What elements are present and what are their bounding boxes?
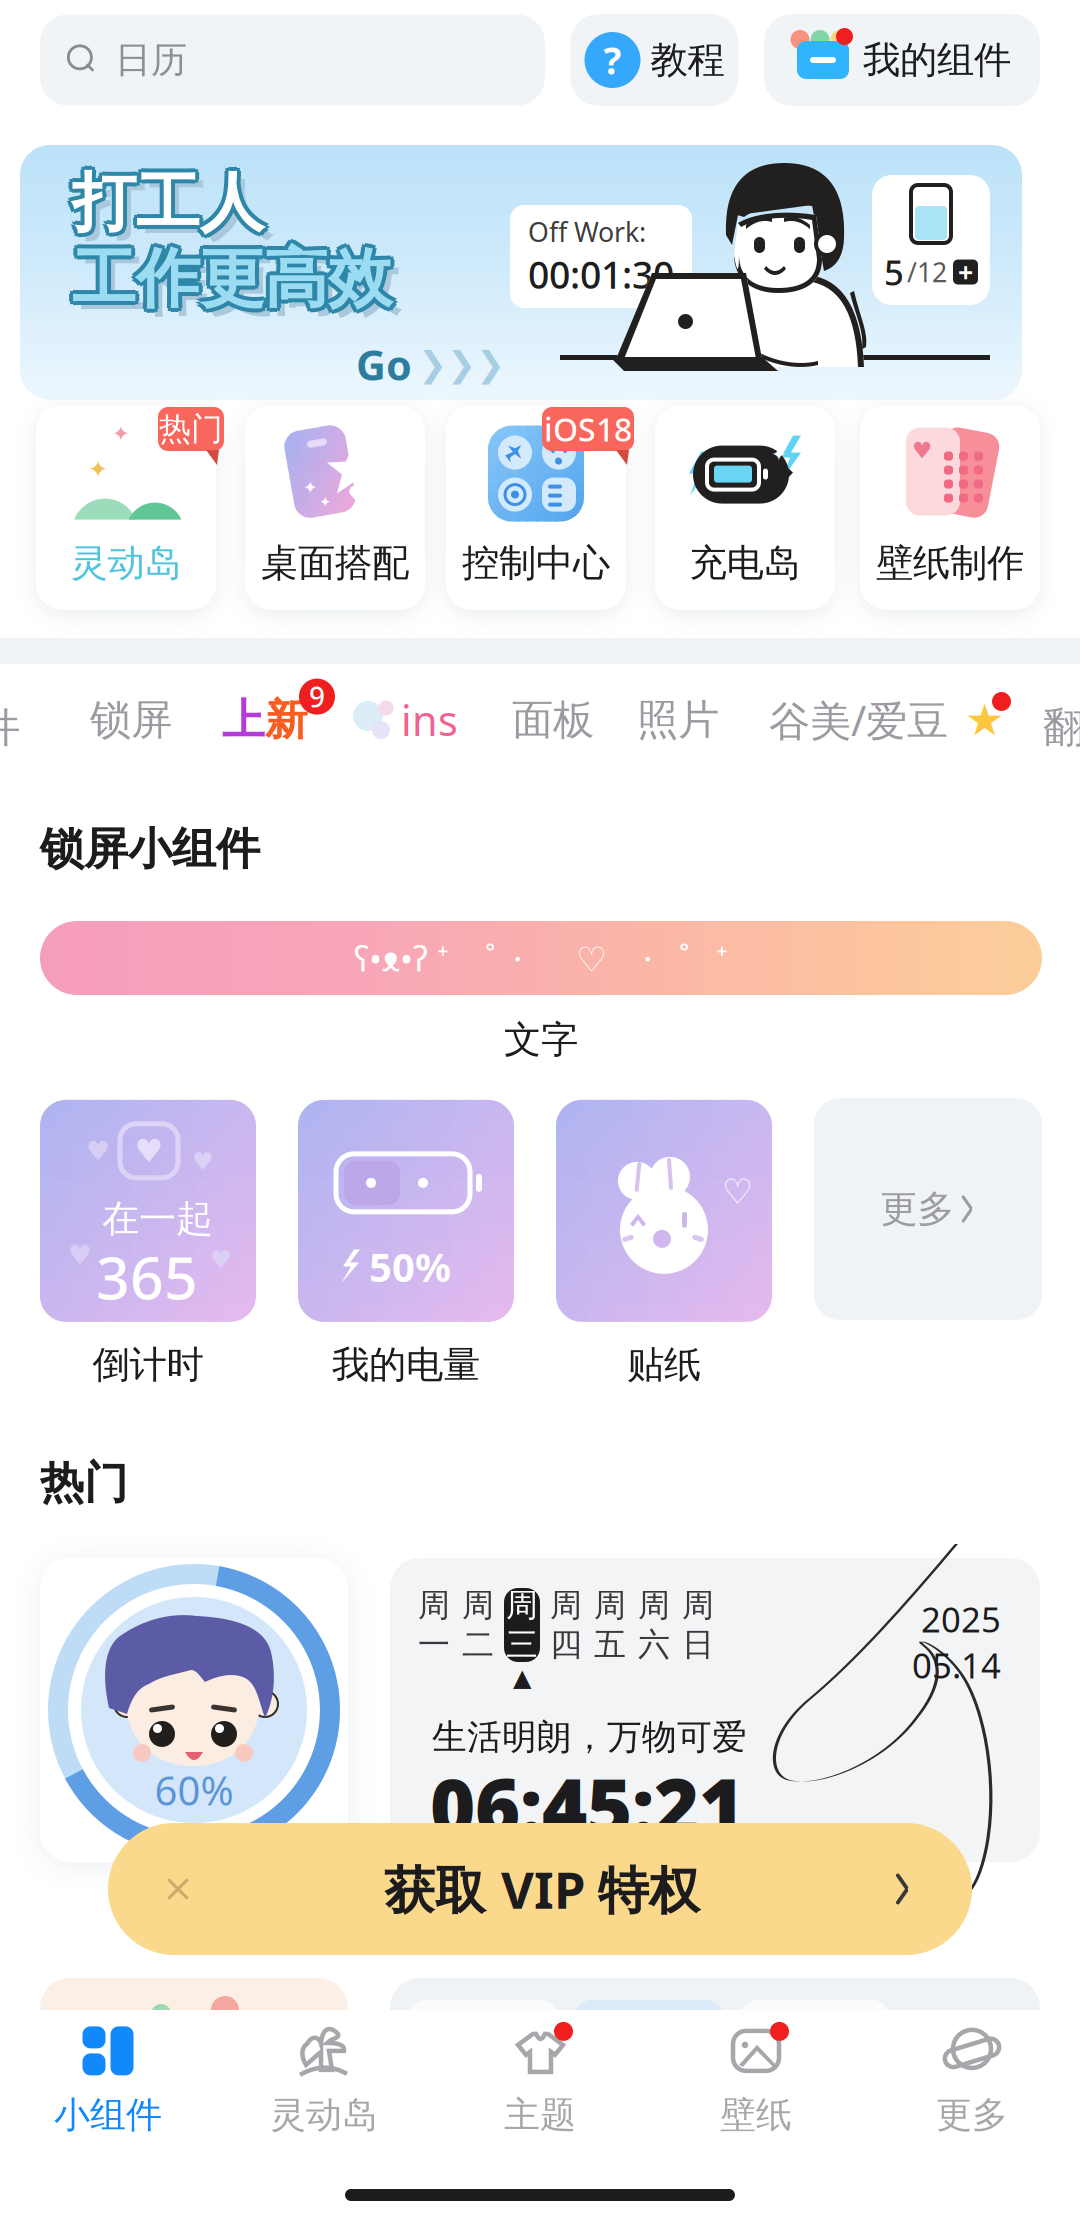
staticText: 打工人 (75, 161, 267, 239)
staticText: ♥ (68, 1240, 92, 1270)
button[interactable]: ? (570, 14, 738, 106)
button[interactable]: ✦ (245, 405, 425, 610)
staticText: 灵动岛 (70, 540, 181, 586)
button[interactable]: 照片 (630, 690, 726, 750)
staticText: ✦ (112, 422, 130, 446)
staticText: 打工人 (72, 160, 264, 238)
button[interactable]: 面板 (505, 690, 601, 750)
staticText: 打工人 (68, 164, 260, 242)
staticText: 二 (462, 1625, 494, 1664)
staticText: 打工人 (75, 167, 267, 245)
button[interactable]: ʕ•ᴥ•ʔ ⁺ ˚ · ♡ · ˚ ⁺ (40, 921, 1042, 995)
staticText: 06:45:21 (430, 1754, 744, 1857)
staticText: 工作更高效 (72, 236, 392, 314)
button[interactable]: 更多 (864, 2010, 1080, 2150)
button[interactable]: 主题 (432, 2010, 648, 2150)
button[interactable]: ♥ (40, 1100, 256, 1388)
staticText: ♡ (722, 1172, 753, 1211)
staticText: ★ (965, 695, 1004, 745)
button[interactable]: 电量：60% (390, 1978, 1040, 2178)
staticText: 9 (309, 678, 325, 715)
staticText: 50% (369, 1240, 451, 1293)
staticText: 六 (638, 1625, 670, 1664)
staticText: 充电岛 (689, 540, 800, 586)
staticText: ❯❯❯ (418, 345, 505, 384)
staticText: 五 (594, 1625, 626, 1664)
button[interactable]: 50% (298, 1100, 514, 1388)
staticText: ✦ (319, 494, 331, 510)
staticText: Go (356, 337, 412, 392)
button[interactable]: 60% (40, 1558, 348, 1862)
button[interactable]: 更多 (814, 1098, 1042, 1390)
staticText: 主题 (504, 2093, 576, 2137)
staticText: 周 (638, 1586, 670, 1625)
staticText: 倒计时 (92, 1342, 203, 1388)
staticText: 打工人 (80, 172, 272, 250)
button[interactable]: 我的组件 (764, 14, 1040, 106)
staticText: 热门 (159, 409, 223, 449)
button[interactable]: 锁屏 (83, 690, 179, 750)
staticText: 生活明朗，万物可爱 (432, 1716, 747, 1759)
staticText: 2025 (921, 1596, 1001, 1642)
staticText: ♥ (210, 1246, 232, 1273)
staticText: 谷美/爱豆 (769, 693, 948, 747)
staticText: 电量：60% (878, 2022, 1037, 2064)
button[interactable]: 获取 VIP 特权 (108, 1823, 972, 1955)
staticText: 周 (594, 1586, 626, 1625)
button[interactable] (40, 1978, 348, 2178)
staticText: 桌面搭配 (261, 540, 409, 586)
staticText: 控制中心 (462, 540, 610, 586)
staticText: 一 (418, 1625, 450, 1664)
staticText: 更多 (880, 1186, 954, 1232)
staticText: ♥ (134, 1133, 163, 1169)
staticText: 上 (222, 694, 265, 746)
staticText: 四 (550, 1625, 582, 1664)
staticText: 翻 (1043, 702, 1080, 753)
staticText: 件 (0, 702, 20, 753)
staticText: 日历 (115, 38, 187, 82)
staticText: 文字 (504, 1017, 578, 1063)
button[interactable]: 控制中心 (450, 405, 630, 610)
staticText: ✦ (771, 444, 787, 465)
staticText: 365 (96, 1238, 198, 1316)
button[interactable]: ins (351, 690, 479, 750)
staticText: 工作更高效 (69, 237, 389, 315)
button[interactable]: 谷美/爱豆 (769, 690, 1017, 750)
button[interactable]: 周 (390, 1558, 1040, 1862)
button[interactable]: ✦ (655, 405, 835, 610)
button[interactable]: ✦ (40, 405, 220, 610)
staticText: 更多 (936, 2093, 1008, 2137)
staticText: 周 (462, 1586, 494, 1625)
button[interactable]: 上 (213, 690, 335, 750)
button[interactable]: ♡ (556, 1100, 772, 1388)
staticText: 工作更高效 (69, 243, 389, 321)
button[interactable]: 灵动岛 (216, 2010, 432, 2150)
staticText: 工作更高效 (72, 240, 392, 318)
staticText: 热门 (40, 1456, 128, 1510)
staticText: + (958, 254, 973, 290)
staticText: 周 (682, 1586, 714, 1625)
staticText: 60% (154, 1763, 233, 1816)
staticText: 打工人 (69, 161, 261, 239)
staticText: 00:01:30 (528, 249, 674, 299)
staticText: 05.14 (912, 1642, 1001, 1688)
staticText: 周 (418, 1586, 450, 1625)
staticText: ʕ•ᴥ•ʔ ⁺ ˚ · ♡ · ˚ ⁺ (354, 935, 728, 981)
staticText: 周 (506, 1586, 538, 1625)
staticText: 日 (682, 1625, 714, 1664)
staticText: 在一起 (102, 1196, 213, 1242)
staticText: 工作更高效 (72, 244, 392, 322)
staticText: 我的组件 (863, 37, 1011, 83)
button[interactable]: ♥ (860, 405, 1040, 610)
staticText: 工作更高效 (75, 243, 395, 321)
staticText: ins (401, 693, 458, 747)
button[interactable]: 壁纸 (648, 2010, 864, 2150)
staticText: 工作更高效 (68, 240, 388, 318)
button[interactable]: 小组件 (0, 2010, 216, 2150)
staticText: 获取 VIP 特权 (384, 1855, 700, 1923)
button[interactable]: 日历 (40, 14, 545, 105)
staticText: ? (603, 35, 621, 85)
staticText: 打工人 (72, 168, 264, 246)
staticText: /12 (907, 254, 947, 290)
